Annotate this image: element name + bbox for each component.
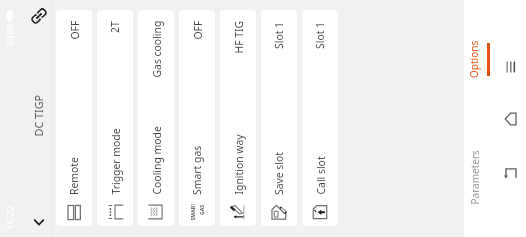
staticText: Call slot [313,155,327,194]
button[interactable]: OFF [56,10,92,226]
button[interactable]: 2T [97,10,133,226]
button[interactable]: Back [498,159,524,185]
button[interactable]: OFF [179,10,215,226]
staticText: 2T [108,21,122,33]
button[interactable]: Recent apps [498,54,524,80]
staticText: Ignition way [231,133,245,194]
button[interactable]: Slot 1 [261,10,297,226]
button[interactable]: Slot 1 [302,10,338,226]
staticText: OFF [190,20,204,39]
button[interactable]: Options [464,0,492,118]
staticText: Cooling mode [149,125,163,194]
staticText: Remote [67,157,81,195]
staticText: GAS [198,204,205,215]
staticText: Options [467,40,481,78]
staticText: Slot 1 [272,21,286,49]
button[interactable]: Home [498,106,524,132]
staticText: Slot 1 [313,21,327,49]
staticText: SMART [188,204,195,220]
staticText: Gas cooling [149,20,163,77]
staticText: 16:22 [4,205,17,230]
button[interactable]: Back [27,210,51,234]
staticText: Trigger mode [108,127,122,194]
button[interactable]: Gas cooling [138,10,174,226]
staticText: Smart gas [190,145,204,195]
staticText: HF TIG [231,20,245,53]
staticText: Parameters [467,149,481,204]
button[interactable]: HF TIG [220,10,256,226]
button[interactable]: Parameters [464,118,492,237]
staticText: Save slot [272,151,286,195]
button[interactable]: Link devices [27,4,51,28]
staticText: DC TIGP [30,94,45,136]
staticText: OFF [67,20,81,39]
